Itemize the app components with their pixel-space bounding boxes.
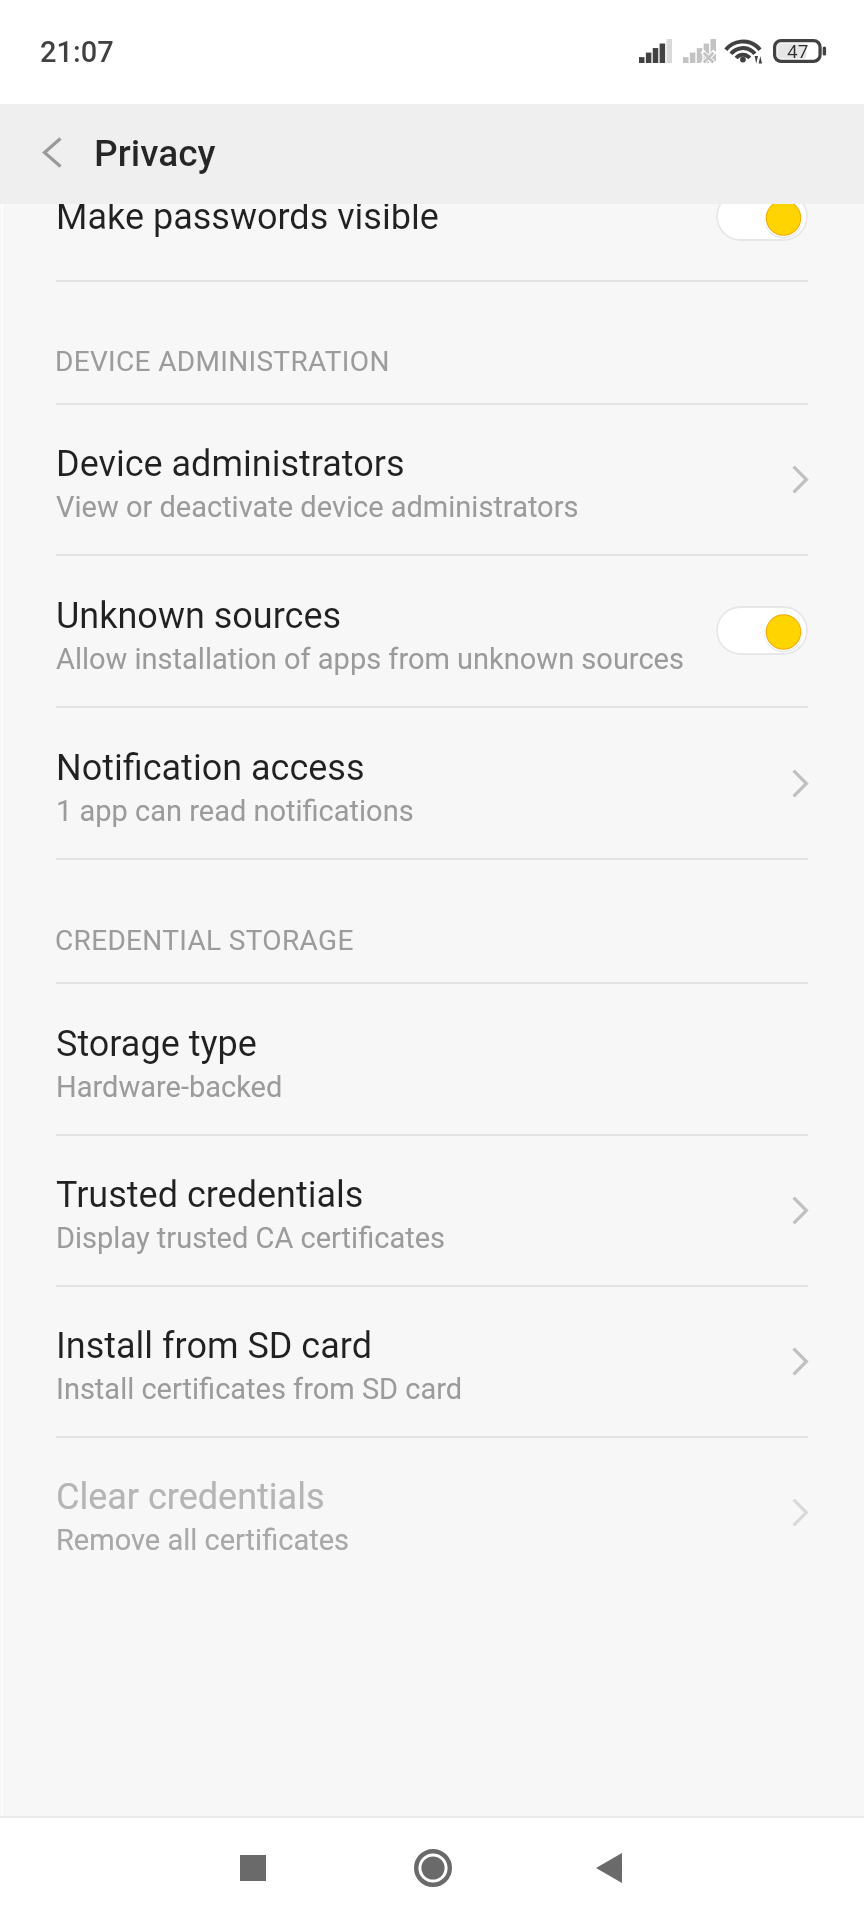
staticText: Notification access <box>56 747 365 789</box>
staticText: Remove all certificates <box>56 1523 350 1557</box>
staticText: Display trusted CA certificates <box>56 1221 446 1255</box>
staticText: Allow installation of apps from unknown … <box>56 642 684 676</box>
button[interactable]: Make passwords visible <box>0 204 864 255</box>
button[interactable]: Recent apps <box>203 1818 303 1918</box>
button[interactable]: Device administrators <box>0 405 864 554</box>
button[interactable]: Notification access <box>0 708 864 858</box>
staticText: Install from SD card <box>56 1325 372 1367</box>
staticText: Storage type <box>56 1023 257 1065</box>
staticText: 21:07 <box>40 35 114 69</box>
button[interactable]: Trusted credentials <box>0 1136 864 1285</box>
button[interactable]: Unknown sources <box>0 556 864 706</box>
staticText: Trusted credentials <box>56 1174 364 1216</box>
staticText: View or deactivate device administrators <box>56 490 579 524</box>
button[interactable]: Back <box>559 1818 659 1918</box>
staticText: 1 app can read notifications <box>56 794 414 828</box>
button[interactable]: Install from SD card <box>0 1287 864 1436</box>
staticText: DEVICE ADMINISTRATION <box>55 345 390 378</box>
button[interactable]: Storage type <box>0 984 864 1134</box>
button[interactable]: Clear credentials <box>0 1438 864 1587</box>
staticText: Make passwords visible <box>56 204 716 238</box>
staticText: CREDENTIAL STORAGE <box>55 924 354 957</box>
staticText: 47 <box>787 40 809 62</box>
staticText: Install certificates from SD card <box>56 1372 463 1406</box>
staticText: Device administrators <box>56 443 405 485</box>
staticText: Clear credentials <box>56 1476 325 1518</box>
button[interactable]: Home <box>383 1818 483 1918</box>
staticText: Unknown sources <box>56 595 342 637</box>
button[interactable]: Navigate up <box>0 104 100 204</box>
staticText: Hardware-backed <box>56 1070 283 1104</box>
staticText: Privacy <box>94 132 216 175</box>
